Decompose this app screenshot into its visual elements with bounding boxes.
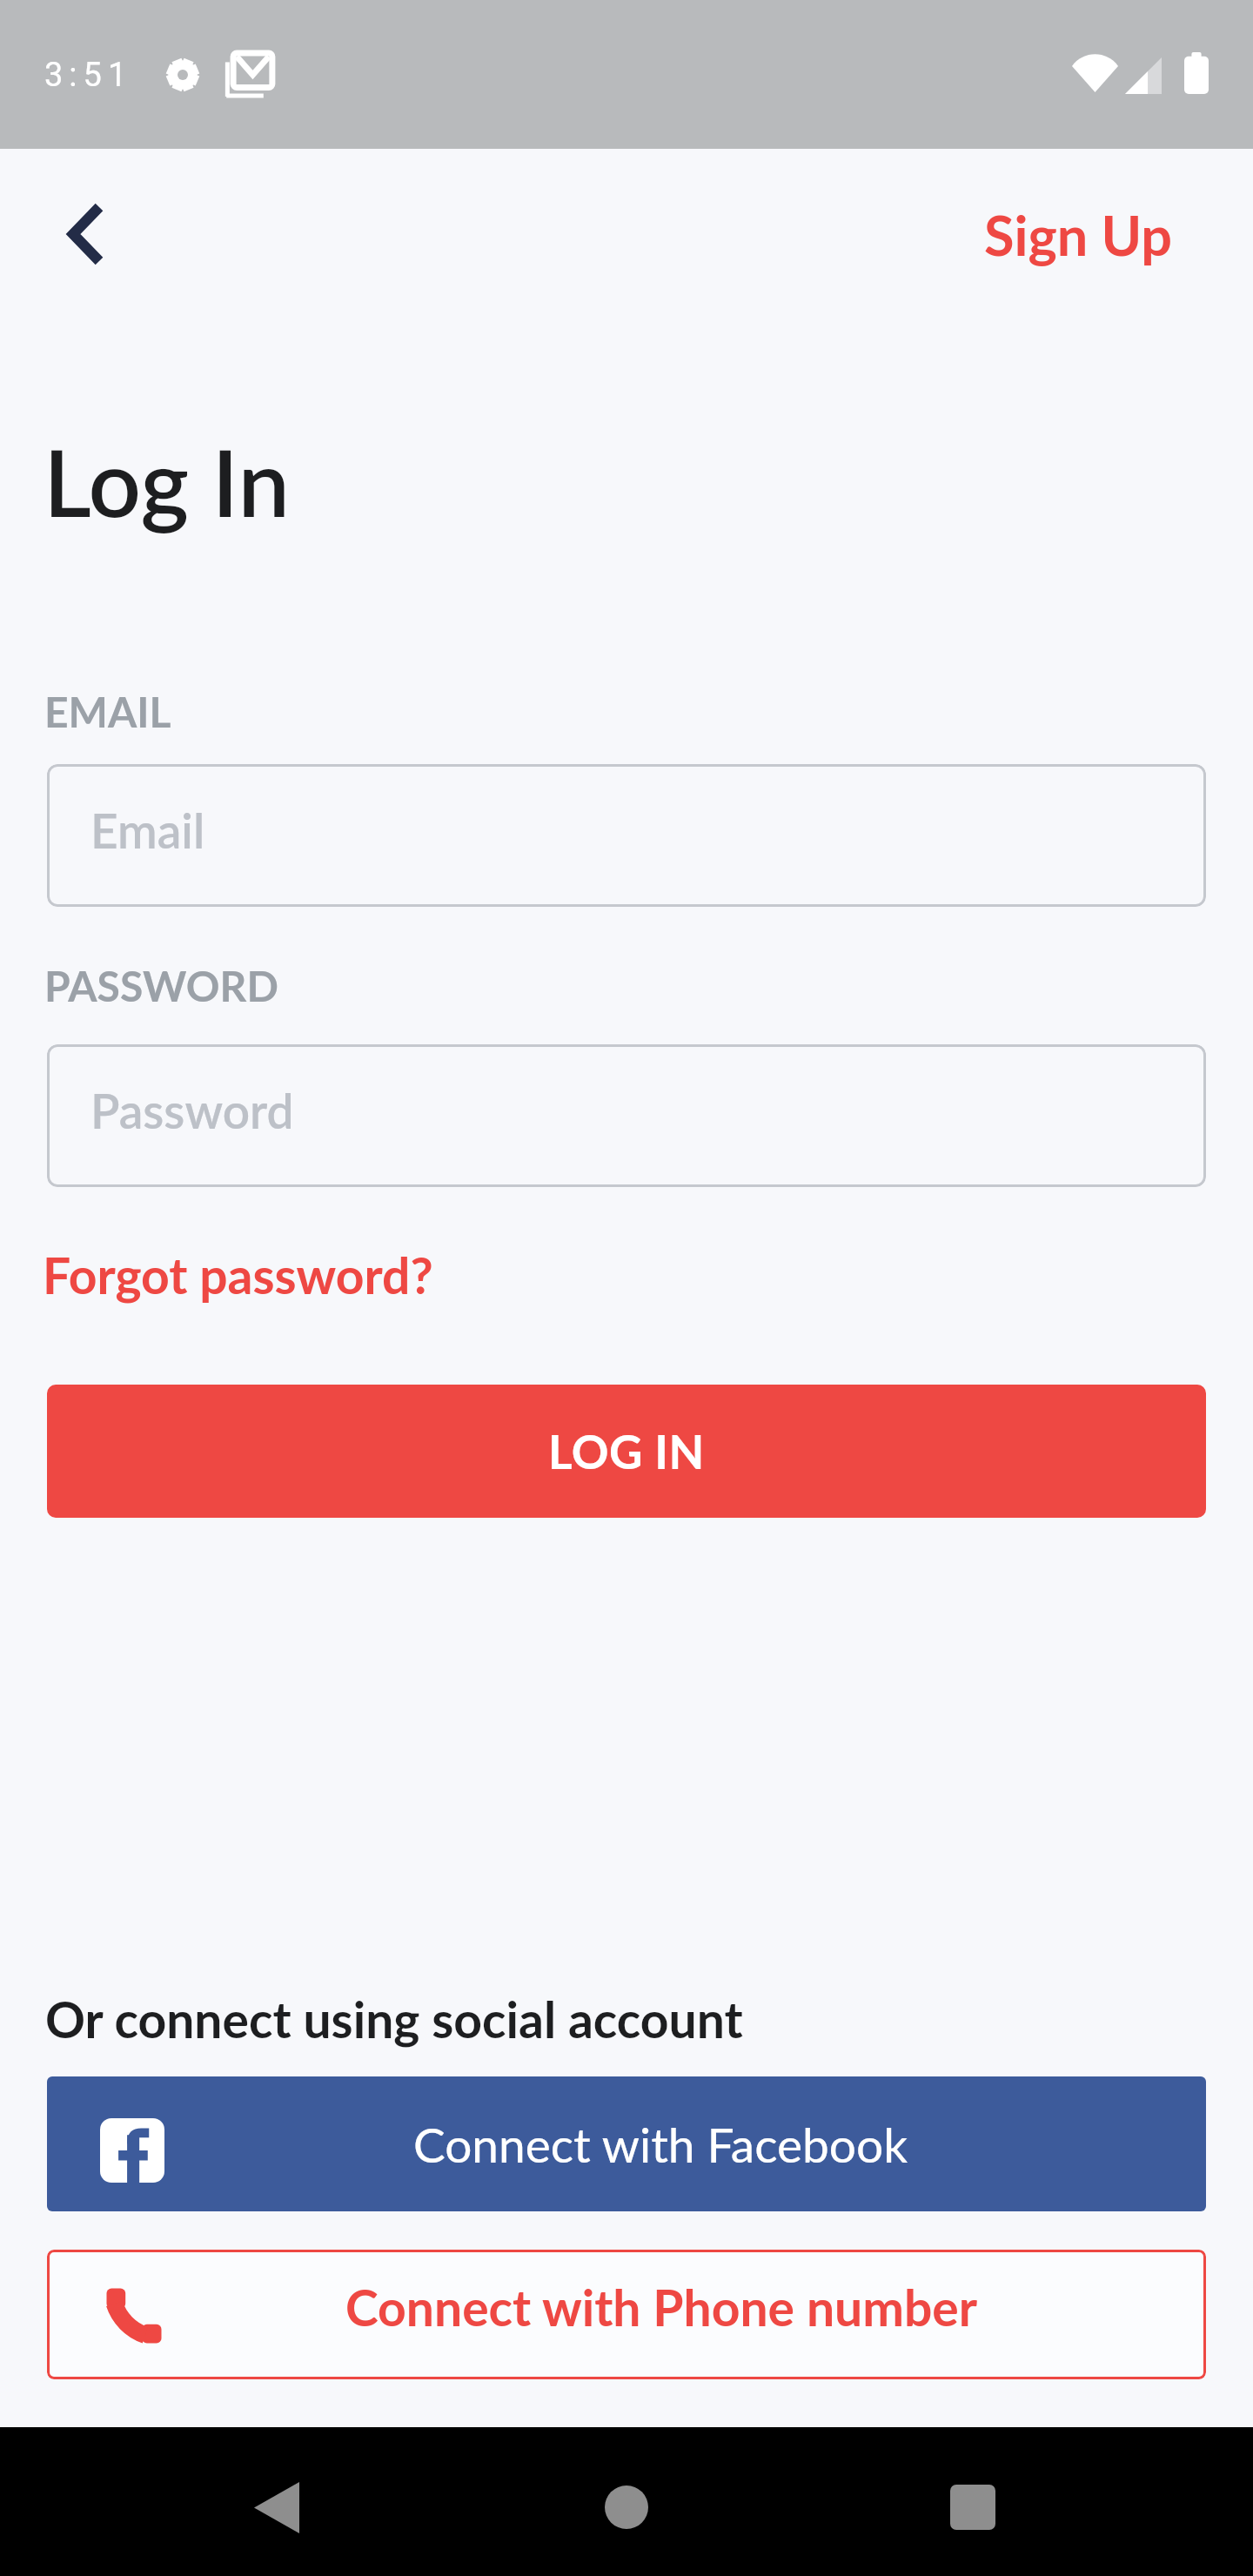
staticText: Or connect using social account: [45, 1989, 743, 2049]
button[interactable]: [35, 184, 139, 289]
button[interactable]: Forgot password?: [43, 1245, 433, 1305]
staticText: Connect with Facebook: [413, 2116, 908, 2173]
button[interactable]: Connect with Phone number: [47, 2250, 1206, 2379]
staticText: Password: [90, 1082, 294, 1139]
staticText: EMAIL: [44, 687, 171, 737]
staticText: Log In: [44, 426, 290, 536]
staticText: 3:51: [44, 56, 133, 95]
staticText: Connect with Phone number: [345, 2277, 977, 2337]
button[interactable]: Email: [47, 764, 1206, 907]
button[interactable]: [574, 2455, 679, 2559]
button[interactable]: [224, 2455, 329, 2559]
staticText: Email: [90, 802, 205, 859]
button[interactable]: Connect with Facebook: [47, 2076, 1206, 2211]
button[interactable]: Password: [47, 1044, 1206, 1187]
staticText: Sign Up: [984, 202, 1173, 268]
staticText: PASSWORD: [44, 961, 278, 1011]
staticText: Forgot password?: [43, 1245, 433, 1305]
button[interactable]: [921, 2455, 1025, 2559]
staticText: LOG IN: [548, 1424, 705, 1479]
button[interactable]: LOG IN: [47, 1385, 1206, 1518]
button[interactable]: Sign Up: [984, 202, 1173, 268]
